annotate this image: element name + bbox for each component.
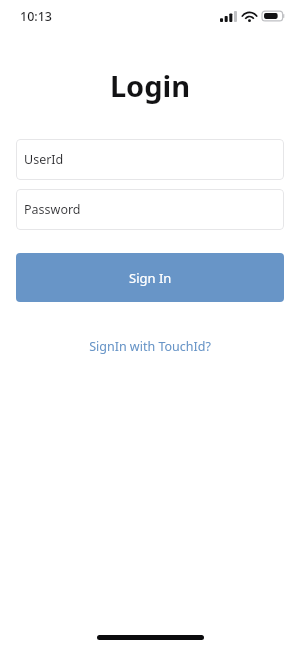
staticText: 10:13 <box>20 8 53 25</box>
staticText: Login <box>0 66 300 105</box>
staticText: Sign In <box>129 269 172 287</box>
button[interactable]: Sign In <box>16 253 284 302</box>
staticText: SignIn with TouchId? <box>89 338 211 355</box>
button[interactable]: Password <box>16 189 284 230</box>
button[interactable]: UserId <box>16 139 284 180</box>
staticText: UserId <box>24 151 64 168</box>
button[interactable]: SignIn with TouchId? <box>0 332 300 361</box>
staticText: Password <box>24 201 81 218</box>
